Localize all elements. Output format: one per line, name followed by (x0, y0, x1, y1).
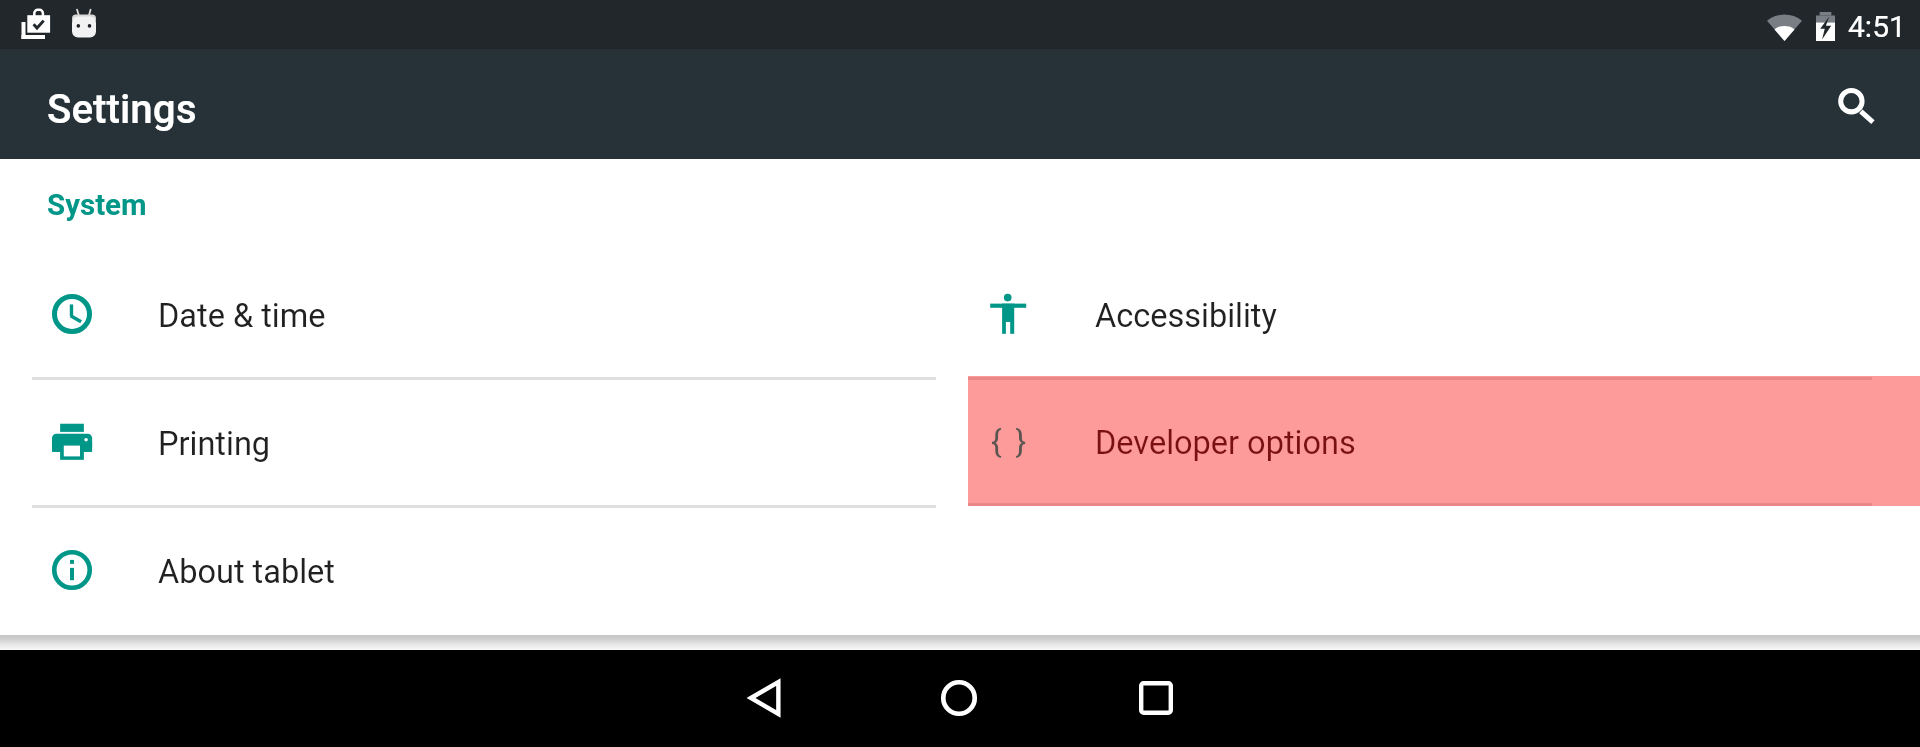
button[interactable]: Search (1812, 64, 1900, 152)
staticText: 4:51 (1848, 9, 1906, 44)
staticText: System (47, 188, 147, 223)
button[interactable]: Back (716, 650, 812, 746)
staticText: Printing (158, 425, 271, 463)
staticText: { } (991, 423, 1030, 460)
button[interactable]: About tablet (0, 506, 960, 634)
staticText: Date & time (158, 297, 326, 335)
staticText: Accessibility (1095, 297, 1277, 335)
button[interactable]: Date & time (0, 250, 960, 378)
button[interactable]: Home (911, 650, 1007, 746)
staticText: Settings (47, 86, 197, 133)
staticText: Developer options (1095, 424, 1356, 462)
staticText: About tablet (158, 553, 335, 591)
button[interactable]: { } (968, 376, 1920, 506)
button[interactable]: Accessibility (960, 250, 1920, 378)
button[interactable]: Printing (0, 378, 960, 506)
button[interactable]: Recents (1108, 650, 1204, 746)
